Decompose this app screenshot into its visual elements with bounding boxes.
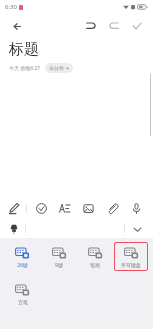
- button[interactable]: Attach file: [104, 200, 121, 217]
- button[interactable]: 26键: [5, 242, 40, 272]
- staticText: 五笔: [18, 299, 28, 305]
- button[interactable]: Brush style: [6, 221, 22, 237]
- staticText: 未分类: [49, 65, 64, 71]
- staticText: 6:30: [5, 3, 17, 11]
- button[interactable]: Insert image: [80, 200, 97, 217]
- button[interactable]: 未分类: [45, 63, 73, 73]
- staticText: 今天 傍晚6:27: [9, 65, 41, 72]
- button[interactable]: Redo: [104, 16, 124, 36]
- button[interactable]: 9键: [42, 242, 76, 272]
- button[interactable]: 手写键盘: [114, 242, 148, 271]
- staticText: 9键: [55, 262, 63, 269]
- button[interactable]: Checklist: [33, 200, 50, 217]
- button[interactable]: Collapse: [129, 221, 145, 237]
- button[interactable]: Undo: [81, 16, 101, 36]
- staticText: 26键: [17, 262, 28, 269]
- staticText: 标题: [9, 40, 39, 59]
- staticText: 手写键盘: [121, 262, 141, 268]
- button[interactable]: Voice input: [128, 200, 145, 217]
- button[interactable]: Text format: [56, 200, 73, 217]
- button[interactable]: Back: [6, 16, 26, 36]
- staticText: 笔画: [90, 262, 100, 268]
- button[interactable]: 五笔: [5, 279, 40, 308]
- button[interactable]: Draw: [6, 200, 23, 217]
- button[interactable]: Done: [127, 16, 147, 36]
- button[interactable]: 笔画: [78, 242, 112, 271]
